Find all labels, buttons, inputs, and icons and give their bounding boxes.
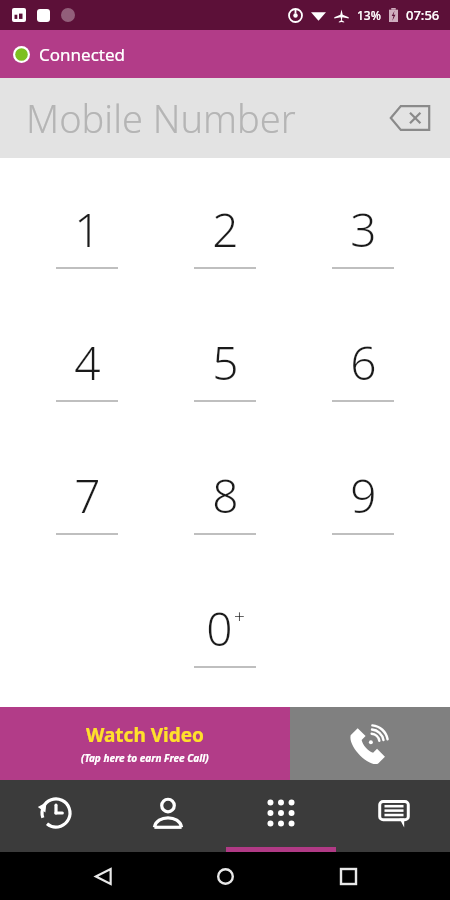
button[interactable]: Backspace: [384, 92, 436, 144]
button[interactable]: 7: [18, 433, 156, 566]
button[interactable]: 6: [294, 300, 432, 433]
button[interactable]: 3: [294, 166, 432, 300]
button[interactable]: Messages: [337, 780, 450, 852]
staticText: 4: [74, 331, 101, 394]
button[interactable]: Home: [205, 856, 245, 896]
staticText: 9: [350, 464, 377, 527]
button[interactable]: Contacts: [112, 780, 224, 852]
staticText: +: [234, 603, 245, 629]
staticText: 8: [212, 464, 239, 527]
staticText: 2: [212, 198, 239, 261]
button[interactable]: 8: [156, 433, 294, 566]
staticText: (Tap here to earn Free Call): [81, 751, 209, 765]
staticText: Mobile Number: [26, 92, 296, 144]
button[interactable]: Recents: [328, 856, 368, 896]
staticText: 0: [206, 597, 233, 660]
staticText: Watch Video: [86, 722, 204, 748]
button[interactable]: Recent calls: [0, 780, 112, 852]
staticText: 13%: [357, 7, 381, 23]
button[interactable]: Watch Video: [0, 707, 290, 780]
staticText: 5: [212, 331, 239, 394]
staticText: 7: [74, 464, 101, 527]
button[interactable]: 2: [156, 166, 294, 300]
staticText: 6: [350, 331, 377, 394]
button[interactable]: 0: [156, 566, 294, 699]
button[interactable]: Dialpad: [224, 780, 337, 852]
button[interactable]: 1: [18, 166, 156, 300]
button[interactable]: Call: [290, 707, 450, 780]
button[interactable]: 5: [156, 300, 294, 433]
staticText: Connected: [39, 43, 125, 66]
button[interactable]: 9: [294, 433, 432, 566]
button[interactable]: Back: [83, 856, 123, 896]
button[interactable]: 4: [18, 300, 156, 433]
staticText: 3: [350, 198, 377, 261]
staticText: 1: [74, 198, 101, 261]
staticText: 07:56: [406, 6, 440, 24]
